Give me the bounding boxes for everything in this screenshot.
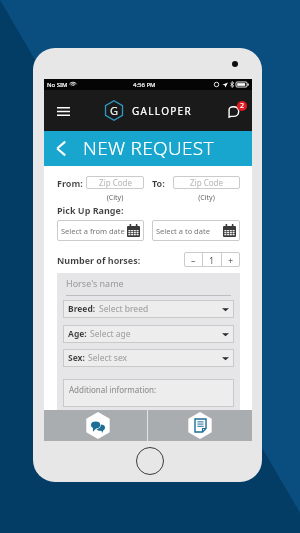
staticText: Zip Code xyxy=(190,177,223,188)
staticText: – xyxy=(191,254,196,266)
button[interactable]: Sex: xyxy=(63,349,234,367)
staticText: G xyxy=(110,103,119,118)
staticText: Age: xyxy=(68,328,87,340)
button[interactable]: Zip Code xyxy=(173,176,240,189)
button[interactable]: Messages xyxy=(44,410,147,441)
staticText: Additional information: xyxy=(69,384,157,395)
staticText: Select age xyxy=(90,328,131,340)
button[interactable]: Zip Code xyxy=(86,176,144,189)
staticText: Select sex xyxy=(88,352,127,364)
button[interactable]: Age: xyxy=(63,325,234,343)
staticText: + xyxy=(228,254,234,266)
button[interactable]: Decrease xyxy=(184,252,202,267)
staticText: To: xyxy=(152,177,165,189)
staticText: Pick Up Range: xyxy=(57,204,124,216)
staticText: (City) xyxy=(173,193,240,203)
staticText: Sex: xyxy=(68,352,85,364)
staticText: NEW REQUEST xyxy=(83,135,214,161)
button[interactable]: Messages xyxy=(222,99,246,123)
button[interactable]: Requests xyxy=(148,410,252,441)
staticText: Select a from date xyxy=(61,226,125,236)
button[interactable]: Increase xyxy=(222,252,240,267)
staticText: 2 xyxy=(240,101,245,111)
staticText: Number of horses: xyxy=(57,254,141,266)
staticText: Select breed xyxy=(99,303,149,315)
staticText: Breed: xyxy=(68,303,96,315)
staticText: (City) xyxy=(86,193,144,203)
button[interactable]: Select a to date xyxy=(152,220,240,241)
staticText: No SIM xyxy=(47,81,68,89)
staticText: Select a to date xyxy=(156,226,210,236)
staticText: 1 xyxy=(209,254,215,266)
staticText: Zip Code xyxy=(99,177,132,188)
staticText: Horse's name xyxy=(66,277,124,289)
staticText: GALLOPER xyxy=(132,104,192,118)
button[interactable]: Menu xyxy=(50,98,76,124)
button[interactable]: Select a from date xyxy=(57,220,144,241)
button[interactable]: Back xyxy=(44,131,79,166)
button[interactable]: Breed: xyxy=(63,300,234,318)
staticText: From: xyxy=(57,177,83,189)
staticText: 4:56 PM xyxy=(133,81,156,89)
button[interactable]: Additional information: xyxy=(63,379,234,407)
